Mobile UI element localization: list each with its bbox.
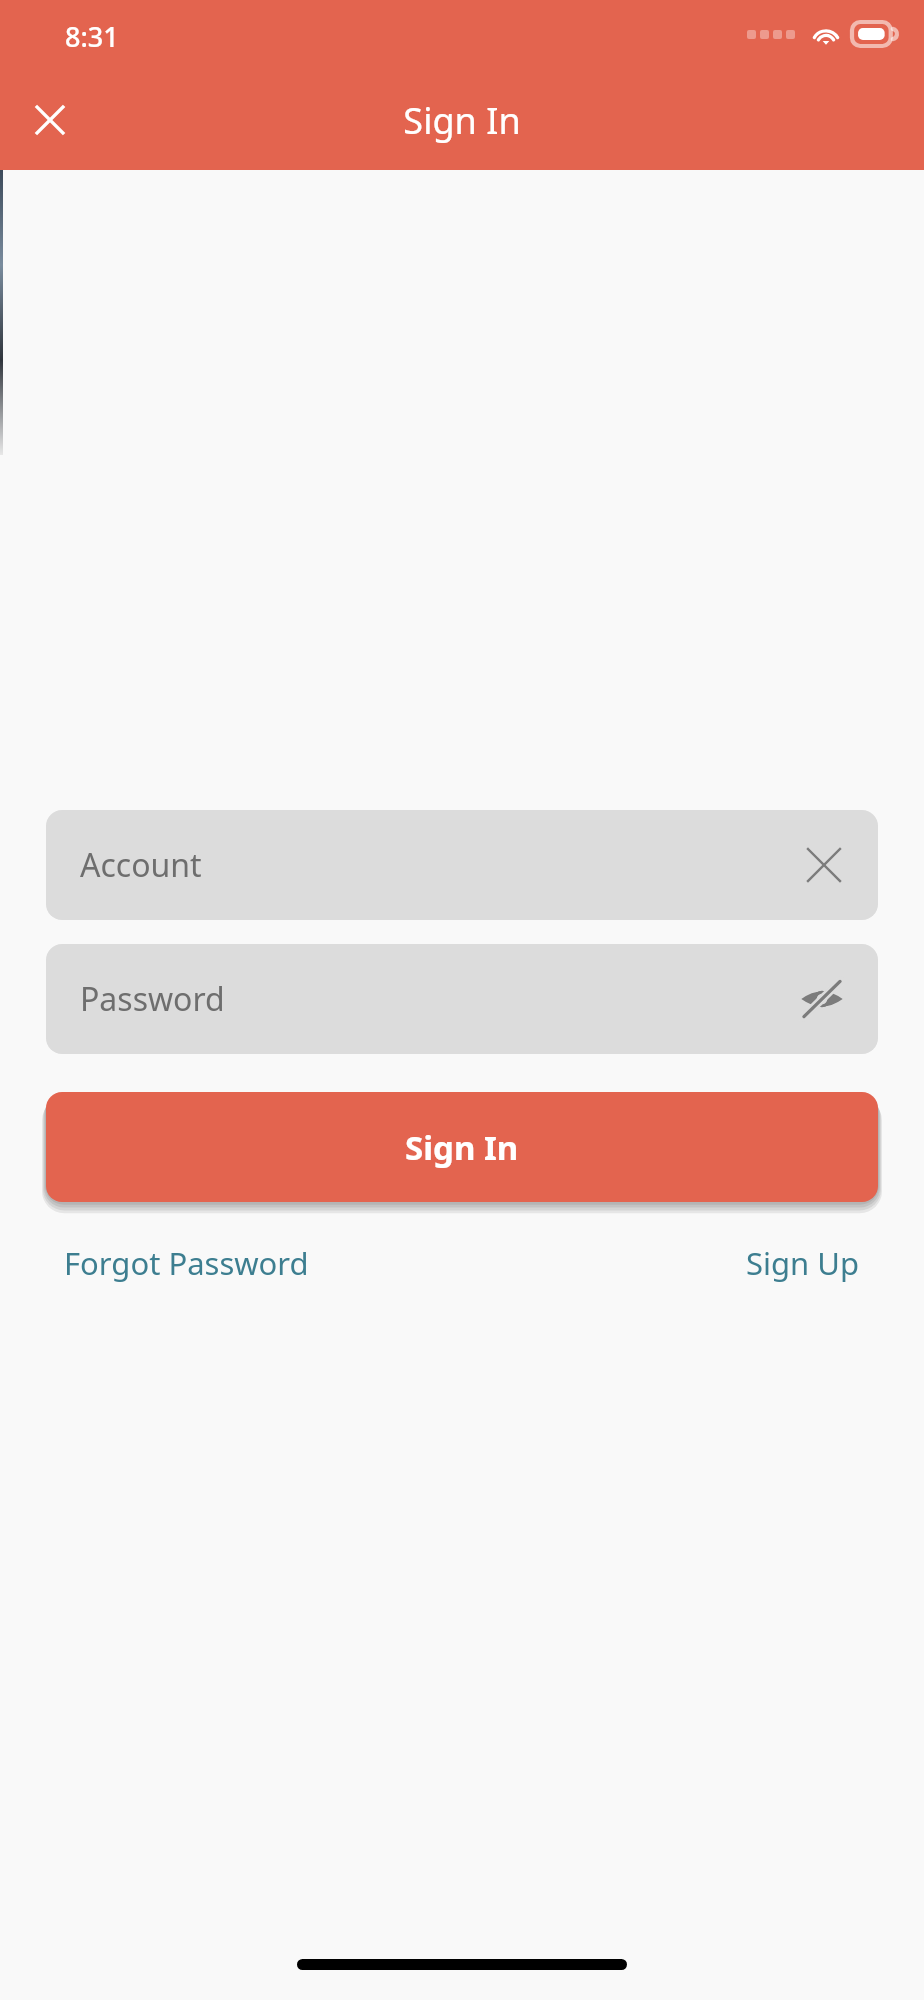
button[interactable]: Password bbox=[46, 944, 878, 1054]
button[interactable]: Sign Up bbox=[728, 1232, 878, 1294]
staticText: Sign In bbox=[405, 1125, 519, 1170]
button[interactable]: Sign In bbox=[46, 1092, 878, 1202]
staticText: Password bbox=[80, 977, 794, 1021]
button[interactable]: Forgot Password bbox=[46, 1232, 327, 1294]
staticText: Account bbox=[80, 843, 798, 887]
staticText: 8:31 bbox=[65, 18, 119, 55]
staticText: Sign In bbox=[403, 96, 521, 145]
staticText: Sign Up bbox=[746, 1242, 860, 1284]
button[interactable]: Clear account bbox=[798, 839, 850, 891]
button[interactable]: Account bbox=[46, 810, 878, 920]
button[interactable]: Close bbox=[22, 92, 78, 148]
staticText: Forgot Password bbox=[64, 1242, 309, 1284]
button[interactable]: Show password bbox=[794, 971, 850, 1027]
